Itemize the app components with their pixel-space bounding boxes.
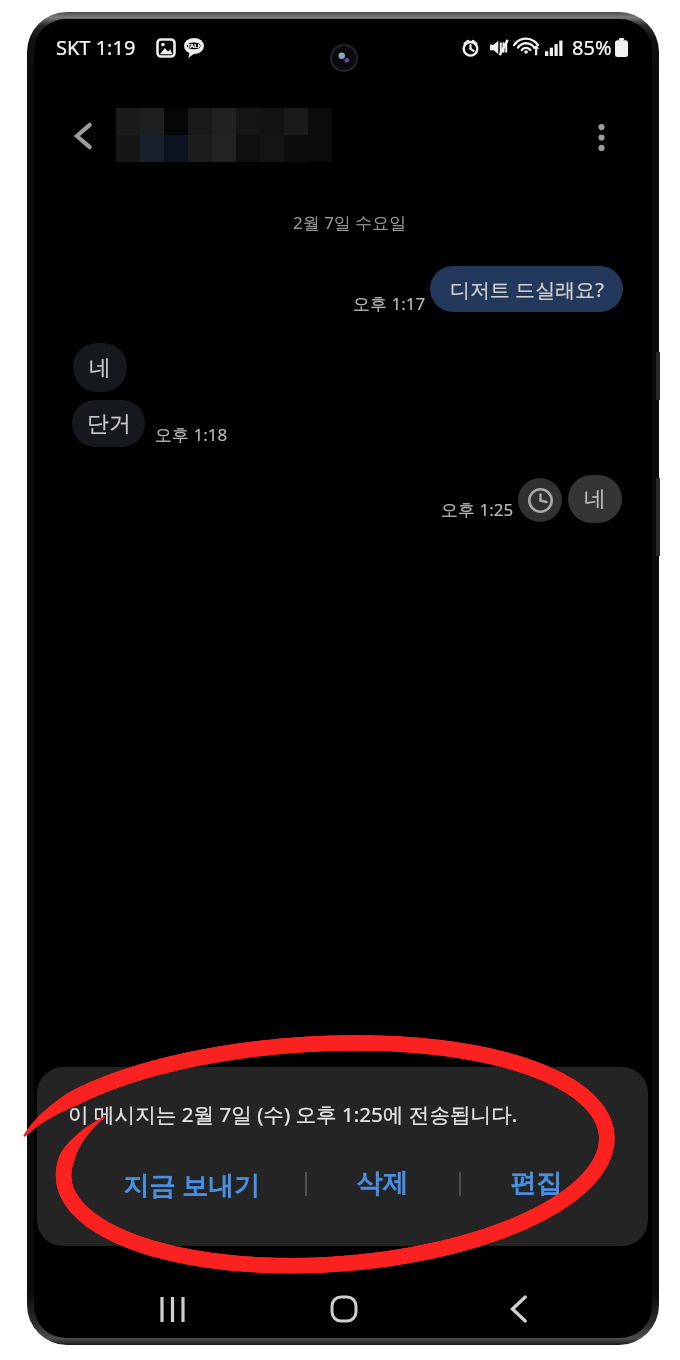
staticText: 2월 7일 수요일 xyxy=(293,211,407,234)
button[interactable]: 지금 보내기 xyxy=(116,1160,267,1210)
staticText: 편집 xyxy=(510,1167,562,1200)
button[interactable]: 네 xyxy=(568,475,622,523)
staticText: 단거 xyxy=(87,410,131,438)
staticText: 지금 보내기 xyxy=(123,1167,260,1203)
button[interactable]: 편집 xyxy=(503,1160,569,1207)
staticText: 네 xyxy=(89,354,111,382)
staticText: 오후 1:17 xyxy=(353,292,426,315)
button[interactable]: Home xyxy=(310,1275,378,1338)
button[interactable]: 단거 xyxy=(72,400,145,447)
staticText: 이 메시지는 2월 7일 (수) 오후 1:25에 전송됩니다. xyxy=(68,1100,518,1128)
staticText: 삭제 xyxy=(356,1167,408,1200)
button[interactable]: Scheduled message xyxy=(518,478,562,522)
staticText: 오후 1:25 xyxy=(441,498,514,521)
staticText: 오후 1:18 xyxy=(155,423,228,446)
button[interactable]: Back xyxy=(57,110,109,162)
button[interactable]: 네 xyxy=(73,343,127,392)
staticText: 85% xyxy=(572,34,612,61)
button[interactable]: More options xyxy=(576,112,626,162)
button[interactable]: 삭제 xyxy=(349,1160,415,1207)
staticText: 네 xyxy=(584,485,606,513)
staticText: TALK xyxy=(187,42,202,50)
button[interactable]: 디저트 드실래요? xyxy=(430,266,623,312)
staticText: 디저트 드실래요? xyxy=(450,276,604,303)
button[interactable]: Back xyxy=(484,1275,552,1338)
staticText: SKT 1:19 xyxy=(56,34,136,61)
button[interactable]: Recent apps xyxy=(138,1275,206,1338)
